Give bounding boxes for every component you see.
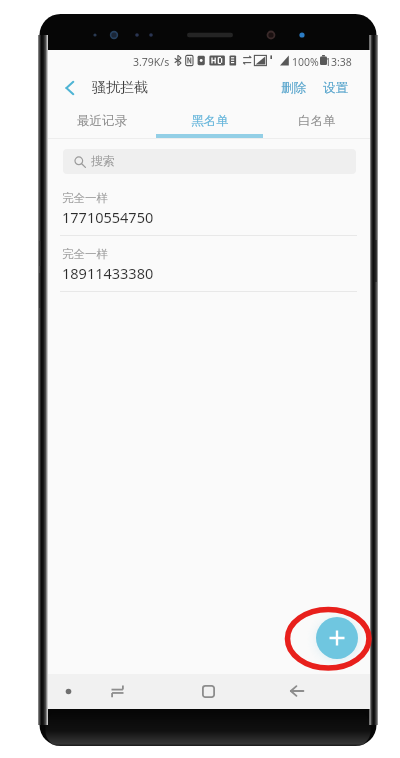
button[interactable]: 最近记录 — [48, 106, 156, 138]
button[interactable]: 完全一样 — [48, 180, 370, 236]
button[interactable]: 删除 — [276, 72, 311, 104]
staticText: 搜索 — [91, 153, 115, 168]
button[interactable]: Recents — [103, 677, 131, 705]
button[interactable]: 完全一样 — [48, 236, 370, 292]
staticText: 删除 — [281, 80, 306, 96]
staticText: 100% — [292, 55, 319, 69]
button[interactable]: Add — [316, 617, 358, 659]
staticText: 17710554750 — [62, 207, 154, 227]
staticText: 13:38 — [325, 55, 352, 69]
button[interactable]: Home — [194, 677, 222, 705]
staticText: 黑名单 — [191, 113, 229, 129]
staticText: 白名单 — [298, 113, 336, 129]
staticText: 设置 — [323, 80, 348, 96]
staticText: 骚扰拦截 — [92, 79, 148, 97]
staticText: 完全一样 — [62, 191, 108, 205]
staticText: 3.79K/s — [133, 55, 170, 69]
button[interactable]: 搜索 — [63, 149, 356, 174]
button[interactable]: 设置 — [318, 72, 353, 104]
staticText: 完全一样 — [62, 247, 108, 261]
button[interactable]: Back — [48, 70, 90, 106]
staticText: 18911433380 — [62, 263, 154, 283]
button[interactable]: Back — [283, 677, 311, 705]
button[interactable]: Notification — [56, 679, 80, 703]
button[interactable]: 黑名单 — [156, 106, 263, 138]
button[interactable]: 白名单 — [263, 106, 370, 138]
staticText: 最近记录 — [77, 113, 127, 129]
